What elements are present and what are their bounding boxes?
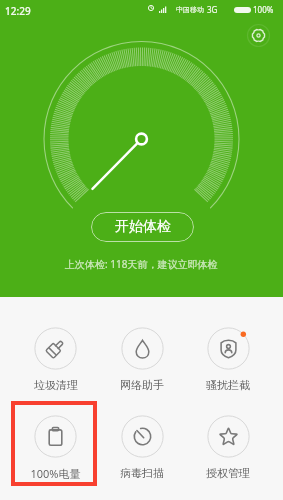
button[interactable]: 病毒扫描 (99, 397, 185, 485)
staticText: 网络助手 (120, 378, 164, 392)
button[interactable]: 授权管理 (185, 397, 271, 485)
button[interactable]: 骚扰拦截 (185, 309, 271, 397)
staticText: 100% (253, 4, 274, 15)
staticText: 100%电量 (30, 466, 81, 481)
staticText: 3G (207, 4, 218, 15)
staticText: 开始体检 (115, 218, 171, 236)
button[interactable]: Settings (245, 22, 272, 49)
button[interactable]: 垃圾清理 (12, 309, 99, 397)
staticText: 骚扰拦截 (206, 378, 250, 392)
staticText: 垃圾清理 (34, 378, 78, 392)
button[interactable]: 网络助手 (99, 309, 185, 397)
staticText: 中国移动 (176, 5, 204, 14)
staticText: 上次体检: 118天前，建议立即体检 (65, 257, 218, 271)
button[interactable]: 100%电量 (12, 397, 99, 485)
staticText: 12:29 (5, 4, 31, 18)
staticText: 病毒扫描 (120, 466, 164, 480)
button[interactable]: 开始体检 (91, 212, 194, 242)
staticText: 授权管理 (206, 466, 250, 480)
